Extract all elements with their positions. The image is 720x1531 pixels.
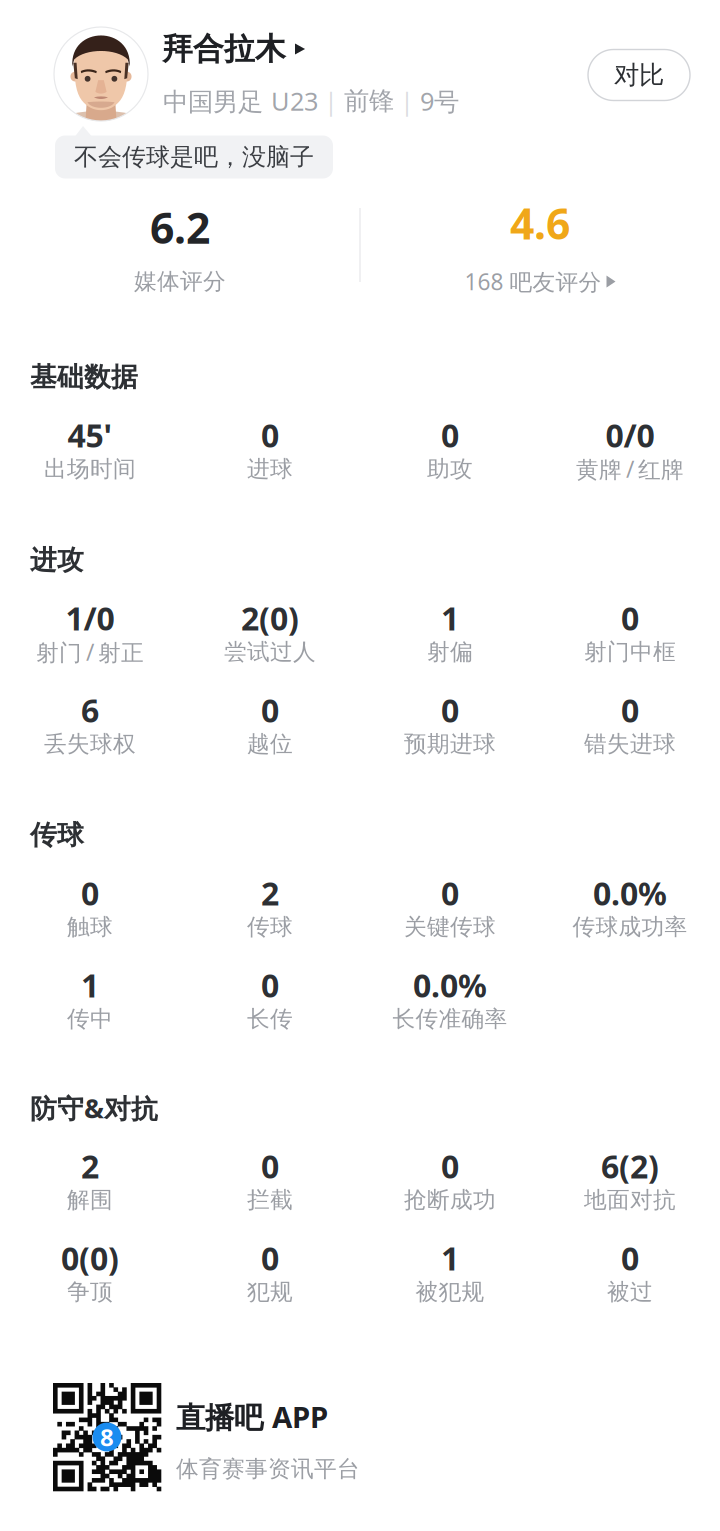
staticText: 长传准确率 [392, 1005, 507, 1033]
staticText: 4.6 [510, 194, 570, 252]
staticText: 1 [441, 596, 459, 640]
button[interactable]: 168 吧友评分 [464, 263, 615, 300]
staticText: 体育赛事资讯平台 [176, 1455, 360, 1483]
staticText: 黄牌 / 红牌 [576, 454, 684, 484]
staticText: 1 [81, 963, 99, 1007]
staticText: 射偏 [427, 638, 473, 666]
staticText: 拜合拉木 [162, 30, 286, 68]
staticText: 1/0 [65, 596, 114, 640]
staticText: 0 [261, 413, 279, 457]
button[interactable]: 对比 [588, 49, 690, 100]
staticText: 0 [621, 596, 639, 640]
staticText: 错失进球 [584, 730, 676, 758]
staticText: 防守&对抗 [30, 1090, 158, 1126]
staticText: 8 [100, 1421, 114, 1453]
staticText: 0 [441, 871, 459, 915]
staticText: 传球 [247, 913, 293, 941]
staticText: 2(0) [241, 596, 299, 640]
staticText: 0 [441, 688, 459, 732]
staticText: 0 [441, 413, 459, 457]
staticText: 出场时间 [44, 455, 136, 483]
staticText: 对比 [614, 59, 664, 91]
staticText: 地面对抗 [584, 1186, 676, 1214]
staticText: 媒体评分 [134, 267, 226, 296]
staticText: 0 [81, 871, 99, 915]
staticText: 0 [621, 688, 639, 732]
staticText: 直播吧 APP [176, 1397, 328, 1437]
staticText: 关键传球 [404, 913, 496, 941]
staticText: 越位 [247, 730, 293, 758]
staticText: 不会传球是吧，没脑子 [74, 142, 314, 172]
staticText: 前锋 [344, 85, 394, 117]
staticText: 助攻 [427, 455, 473, 483]
staticText: 0 [621, 1236, 639, 1280]
staticText: 45' [67, 413, 112, 457]
staticText: 0 [441, 1144, 459, 1188]
staticText: 2 [261, 871, 279, 915]
staticText: 0 [261, 963, 279, 1007]
staticText: 射门 / 射正 [36, 637, 144, 667]
staticText: 射门中框 [584, 638, 676, 666]
button[interactable]: 拜合拉木 [162, 24, 309, 74]
staticText: 抢断成功 [404, 1186, 496, 1214]
staticText: 传球成功率 [572, 913, 687, 941]
staticText: 传中 [67, 1005, 113, 1033]
staticText: 基础数据 [30, 360, 138, 394]
staticText: 进攻 [30, 543, 84, 577]
staticText: 拦截 [247, 1186, 293, 1214]
staticText: 0.0% [413, 963, 487, 1007]
staticText: 6 [81, 688, 99, 732]
staticText: 6(2) [601, 1144, 659, 1188]
staticText: 0 [261, 1144, 279, 1188]
staticText: 尝试过人 [224, 638, 316, 666]
staticText: 进球 [247, 455, 293, 483]
staticText: 争顶 [67, 1278, 113, 1306]
staticText: 解围 [67, 1186, 113, 1214]
staticText: 0 [261, 688, 279, 732]
staticText: 0 [261, 1236, 279, 1280]
staticText: 中国男足 U23 [163, 84, 318, 118]
staticText: 犯规 [247, 1278, 293, 1306]
staticText: 0/0 [605, 413, 654, 457]
staticText: 0.0% [593, 871, 667, 915]
staticText: 9号 [420, 84, 459, 118]
staticText: 2 [81, 1144, 99, 1188]
staticText: 0(0) [61, 1236, 119, 1280]
staticText: 预期进球 [404, 730, 496, 758]
staticText: 被过 [607, 1278, 653, 1306]
staticText: 触球 [67, 913, 113, 941]
staticText: 长传 [247, 1005, 293, 1033]
staticText: 丢失球权 [44, 730, 136, 758]
staticText: | [400, 84, 414, 118]
staticText: 6.2 [150, 198, 210, 256]
staticText: 被犯规 [415, 1278, 484, 1306]
staticText: 168 吧友评分 [464, 266, 601, 297]
staticText: 1 [441, 1236, 459, 1280]
staticText: 传球 [30, 818, 84, 852]
staticText: | [324, 84, 338, 118]
